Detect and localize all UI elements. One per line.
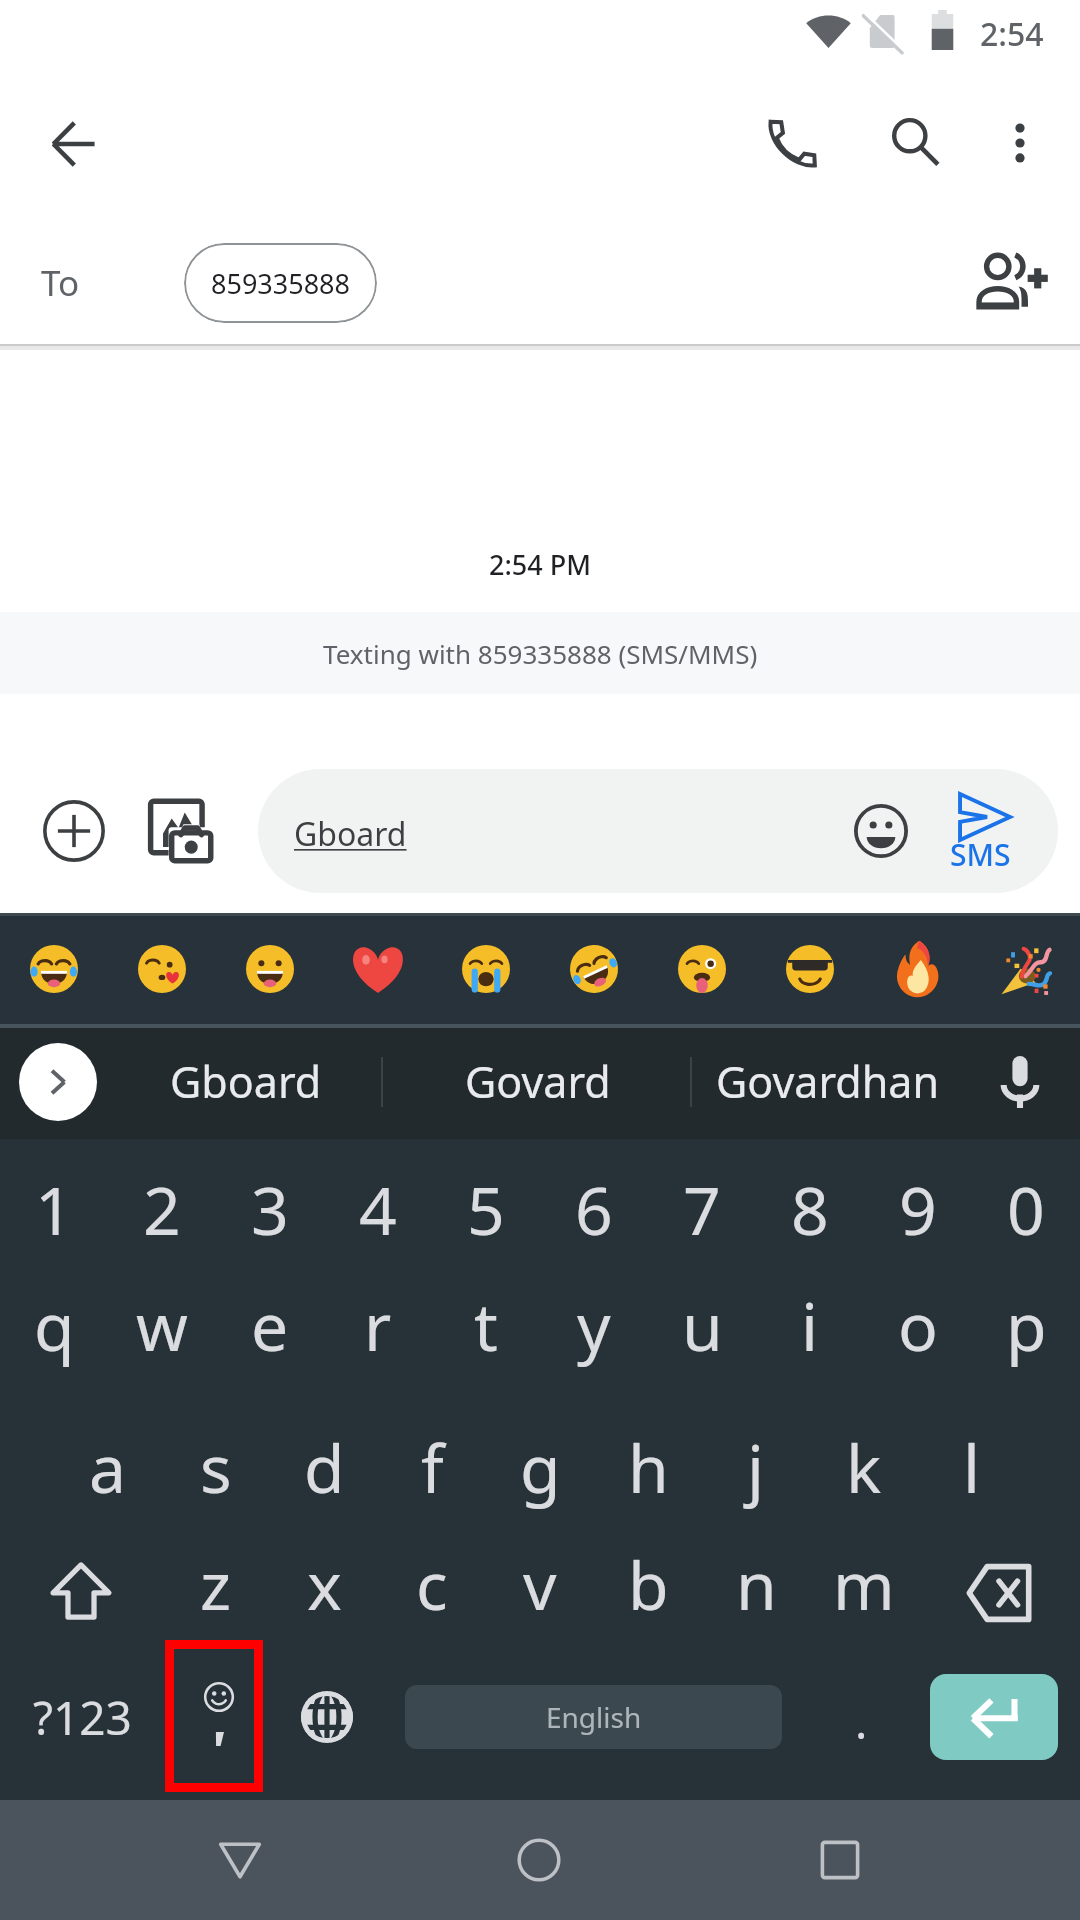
staticText: Texting with 859335888 (SMS/MMS)	[323, 636, 758, 671]
staticText: .	[855, 1690, 868, 1753]
button[interactable]: Back	[18, 88, 128, 198]
staticText: 2:54	[980, 12, 1044, 56]
button[interactable]: t	[432, 1270, 540, 1380]
staticText: n	[736, 1539, 777, 1629]
button[interactable]: Change language	[272, 1637, 382, 1797]
button[interactable]: Emoji 8	[756, 913, 864, 1024]
staticText: 9	[899, 1164, 937, 1254]
button[interactable]: 3	[216, 1154, 324, 1264]
button[interactable]: ?123	[0, 1637, 165, 1797]
button[interactable]: Voice input	[975, 1037, 1065, 1127]
button[interactable]: 9	[864, 1154, 972, 1264]
button[interactable]: r	[324, 1270, 432, 1380]
button[interactable]: Emoji 7	[648, 913, 756, 1024]
button[interactable]: q	[0, 1270, 108, 1380]
button[interactable]: p	[972, 1270, 1080, 1380]
button[interactable]: Govard	[393, 1024, 683, 1139]
staticText: m	[833, 1539, 895, 1629]
staticText: k	[846, 1422, 882, 1512]
button[interactable]: Govardhan	[683, 1024, 973, 1139]
button[interactable]: s	[162, 1412, 270, 1522]
button[interactable]: Emoji 1	[0, 913, 108, 1024]
button[interactable]: Search	[860, 88, 970, 198]
button[interactable]: Back	[180, 1800, 300, 1920]
button[interactable]: b	[594, 1524, 702, 1644]
button[interactable]: 1	[0, 1154, 108, 1264]
button[interactable]: h	[594, 1412, 702, 1522]
button[interactable]: k	[810, 1412, 918, 1522]
button[interactable]: j	[702, 1412, 810, 1522]
staticText: h	[628, 1422, 669, 1512]
button[interactable]: .	[806, 1637, 916, 1797]
button[interactable]: o	[864, 1270, 972, 1380]
staticText: 2:54 PM	[489, 546, 591, 583]
button[interactable]: z	[162, 1524, 270, 1644]
staticText: z	[200, 1539, 232, 1629]
button[interactable]: Emoji 2	[108, 913, 216, 1024]
staticText: 1	[35, 1164, 73, 1254]
button[interactable]: Gboard	[101, 1024, 391, 1139]
staticText: o	[898, 1280, 938, 1370]
staticText: 5	[467, 1164, 505, 1254]
button[interactable]: g	[486, 1412, 594, 1522]
staticText: 7	[683, 1164, 721, 1254]
button[interactable]: 8	[756, 1154, 864, 1264]
button[interactable]: y	[540, 1270, 648, 1380]
staticText: p	[1006, 1280, 1047, 1370]
button[interactable]: Add recipient	[955, 228, 1065, 338]
staticText: To	[41, 259, 80, 307]
staticText: 0	[1007, 1164, 1045, 1254]
button[interactable]: Gboard	[258, 769, 1058, 893]
button[interactable]: 2	[108, 1154, 216, 1264]
button[interactable]: Send SMS	[948, 776, 1058, 886]
button[interactable]: Emoji 4	[324, 913, 432, 1024]
staticText: e	[251, 1280, 289, 1370]
button[interactable]: 6	[540, 1154, 648, 1264]
button[interactable]: 5	[432, 1154, 540, 1264]
button[interactable]: n	[702, 1524, 810, 1644]
button[interactable]: u	[648, 1270, 756, 1380]
staticText: Govard	[465, 1052, 611, 1111]
button[interactable]: 0	[972, 1154, 1080, 1264]
staticText: l	[963, 1422, 981, 1512]
staticText: a	[89, 1422, 127, 1512]
button[interactable]: f	[378, 1412, 486, 1522]
button[interactable]: Enter	[930, 1674, 1058, 1760]
button[interactable]: Emoji 6	[540, 913, 648, 1024]
button[interactable]: 4	[324, 1154, 432, 1264]
button[interactable]: Emoji 5	[432, 913, 540, 1024]
button[interactable]: l	[918, 1412, 1026, 1522]
button[interactable]: w	[108, 1270, 216, 1380]
button[interactable]: Recent apps	[780, 1800, 900, 1920]
button[interactable]: d	[270, 1412, 378, 1522]
button[interactable]: Photos and camera	[129, 779, 233, 883]
button[interactable]: Emoji	[836, 786, 926, 876]
button[interactable]: Home	[479, 1800, 599, 1920]
button[interactable]: Emoji 10	[972, 913, 1080, 1024]
staticText: j	[747, 1422, 765, 1512]
button[interactable]: Emoji 9	[864, 913, 972, 1024]
button[interactable]: Backspace	[918, 1524, 1080, 1644]
button[interactable]: Add attachment	[22, 779, 126, 883]
button[interactable]: Emoji 3	[216, 913, 324, 1024]
button[interactable]: Shift	[0, 1524, 162, 1644]
button[interactable]: 7	[648, 1154, 756, 1264]
button[interactable]: Emoji keyboard	[165, 1640, 263, 1792]
button[interactable]: Call	[738, 88, 848, 198]
staticText: b	[628, 1539, 669, 1629]
button[interactable]: e	[216, 1270, 324, 1380]
staticText: 859335888	[211, 265, 350, 302]
button[interactable]: 859335888	[184, 243, 377, 323]
staticText: SMS	[950, 834, 1011, 875]
button[interactable]: v	[486, 1524, 594, 1644]
button[interactable]: m	[810, 1524, 918, 1644]
button[interactable]: More options	[970, 93, 1070, 193]
button[interactable]: a	[54, 1412, 162, 1522]
button[interactable]: i	[756, 1270, 864, 1380]
button[interactable]: Expand toolbar	[19, 1043, 97, 1121]
staticText: ?123	[33, 1686, 132, 1749]
staticText: i	[801, 1280, 819, 1370]
button[interactable]: x	[270, 1524, 378, 1644]
button[interactable]: English	[405, 1685, 782, 1749]
button[interactable]: c	[378, 1524, 486, 1644]
